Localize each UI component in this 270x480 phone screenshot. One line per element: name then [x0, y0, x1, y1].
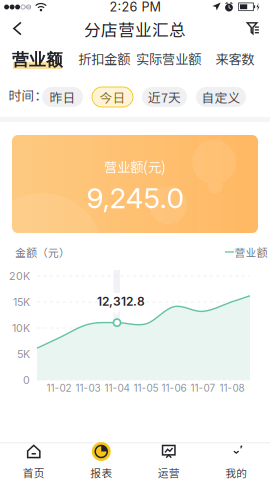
staticText: 近7天 [148, 88, 181, 106]
staticText: 报表 [90, 465, 112, 480]
button[interactable]: 来客数 [209, 43, 260, 73]
staticText: 运营 [158, 465, 180, 480]
staticText: 我的 [225, 465, 247, 480]
staticText: 5K [17, 347, 30, 360]
button[interactable]: 实际营业额 [130, 43, 207, 73]
staticText: 金额（元） [15, 244, 70, 260]
staticText: 12,312.8 [97, 294, 145, 309]
button[interactable]: 筛选 [238, 15, 268, 41]
staticText: 20K [9, 269, 30, 282]
staticText: 11-02 [46, 382, 71, 394]
button[interactable]: 折扣金额 [72, 43, 136, 73]
staticText: 9,245.0 [86, 181, 183, 215]
staticText: 营业额 [234, 244, 267, 260]
staticText: 11-06 [161, 382, 186, 394]
button[interactable]: 近7天 [142, 87, 187, 107]
button[interactable]: 报表 [67, 443, 135, 480]
staticText: 2:26 PM [109, 0, 160, 15]
staticText: 10K [12, 321, 30, 334]
staticText: 11-07 [190, 382, 215, 394]
staticText: 首页 [23, 465, 45, 480]
staticText: 11-04 [104, 382, 129, 394]
button[interactable]: 营业额 [5, 44, 69, 74]
staticText: 11-05 [133, 382, 158, 394]
button[interactable]: 返回 [2, 15, 32, 41]
staticText: 来客数 [215, 49, 254, 68]
staticText: 营业额 [12, 49, 63, 70]
staticText: 折扣金额 [78, 49, 130, 68]
staticText: 分店营业汇总 [84, 17, 186, 41]
button[interactable]: 自定义 [196, 87, 246, 107]
staticText: 自定义 [201, 88, 240, 106]
staticText: 11-03 [75, 382, 100, 394]
staticText: 0 [23, 373, 30, 386]
staticText: 营业额(元) [104, 157, 166, 176]
staticText: 15K [13, 295, 30, 308]
button[interactable]: 昨日 [42, 87, 83, 107]
button[interactable]: 首页 [0, 443, 67, 480]
staticText: 时间： [8, 86, 47, 104]
staticText: 今日 [99, 88, 125, 106]
staticText: 昨日 [49, 88, 75, 106]
staticText: 11-08 [219, 382, 244, 394]
button[interactable]: 运营 [135, 443, 202, 480]
button[interactable]: 今日 [92, 87, 133, 107]
button[interactable]: 我的 [202, 443, 270, 480]
staticText: 实际营业额 [136, 49, 201, 68]
